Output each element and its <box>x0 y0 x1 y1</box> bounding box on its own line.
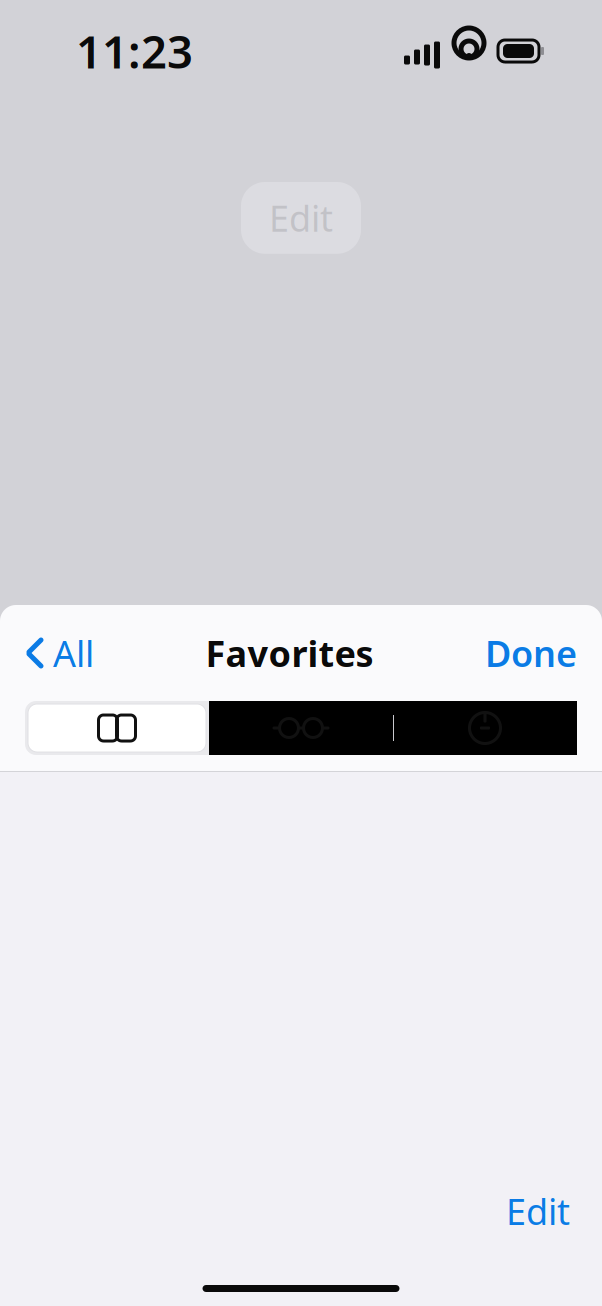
button[interactable]: Edit <box>482 1175 594 1247</box>
button[interactable]: Edit <box>241 182 361 254</box>
button[interactable]: Bookmarks <box>25 701 209 755</box>
staticText: Edit <box>506 1187 570 1235</box>
button[interactable]: All <box>11 619 108 687</box>
button[interactable]: History <box>393 701 577 755</box>
staticText: Favorites <box>205 629 373 677</box>
staticText: 11:23 <box>76 21 193 81</box>
button[interactable]: Done <box>471 619 591 687</box>
staticText: Done <box>485 629 577 677</box>
button[interactable]: Reading List <box>209 701 393 755</box>
staticText: Edit <box>269 194 333 242</box>
staticText: All <box>53 629 94 677</box>
